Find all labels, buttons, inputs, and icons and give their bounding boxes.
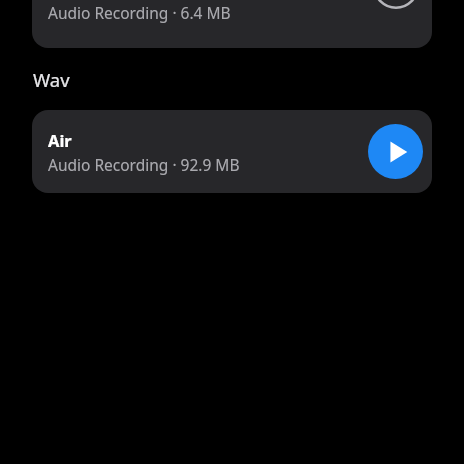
- button[interactable]: Play Air: [368, 124, 423, 179]
- staticText: Wav: [33, 67, 70, 92]
- staticText: Audio Recording · 6.4 MB: [48, 2, 231, 23]
- button[interactable]: Air: [32, 110, 432, 193]
- staticText: Audio Recording · 92.9 MB: [48, 154, 240, 175]
- button[interactable]: Audio Recording · 6.4 MB: [32, 0, 432, 48]
- staticText: Air: [48, 129, 72, 151]
- button[interactable]: Pause: [372, 0, 428, 10]
